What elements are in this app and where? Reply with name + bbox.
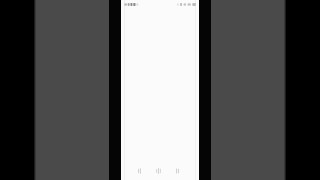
button[interactable]: Home [154, 164, 163, 178]
button[interactable]: Recents [173, 164, 182, 178]
button[interactable]: Back [135, 164, 144, 178]
